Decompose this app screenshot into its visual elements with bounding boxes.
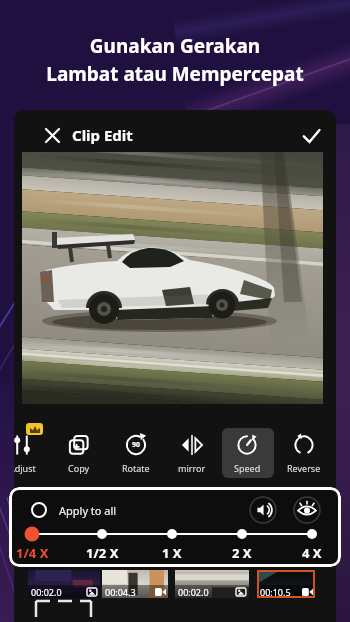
button[interactable] [249,496,277,524]
button[interactable]: mirror [164,433,220,474]
staticText: Speed [234,462,261,474]
staticText: Copy [68,462,90,474]
staticText: 1/4 X [16,544,49,562]
staticText: Apply to all [59,503,117,518]
staticText: 00:10.5 [260,586,291,598]
staticText: 4 X [302,544,322,562]
staticText: Clip Edit [72,125,133,145]
button[interactable]: Apply to all [31,497,117,523]
staticText: 1 X [162,544,182,562]
button[interactable]: 00:04.3 [102,570,168,598]
staticText: Rotate [122,462,150,474]
staticText: 00:02.0 [178,586,209,598]
staticText: Gunakan Gerakan Lambat atau Mempercepat [0,33,350,87]
button[interactable]: 2 X [217,544,267,562]
button[interactable]: 4 X [287,544,337,562]
button[interactable] [290,116,332,154]
button[interactable]: 90 [108,433,164,474]
staticText: Reverse [287,462,321,474]
button[interactable]: Speed [219,433,275,474]
button[interactable]: 1/2 X [77,544,127,562]
button[interactable]: Reverse [276,433,332,474]
staticText: 2 X [232,544,252,562]
button[interactable]: 00:02.0 [175,570,249,598]
staticText: 1/2 X [86,544,119,562]
button[interactable]: Adjust [14,433,50,474]
button[interactable]: 1/4 X [9,544,57,562]
staticText: 00:04.3 [105,586,136,598]
staticText: 00:02.0 [31,586,62,598]
button[interactable] [38,121,66,149]
button[interactable]: 00:02.0 [28,570,100,598]
staticText: mirror [178,462,206,474]
button[interactable]: 1 X [147,544,197,562]
button[interactable]: Copy [51,433,107,474]
staticText: 90 [132,440,141,450]
staticText: Adjust [14,462,36,474]
button[interactable] [293,496,321,524]
button[interactable]: 00:10.5 [257,570,315,598]
